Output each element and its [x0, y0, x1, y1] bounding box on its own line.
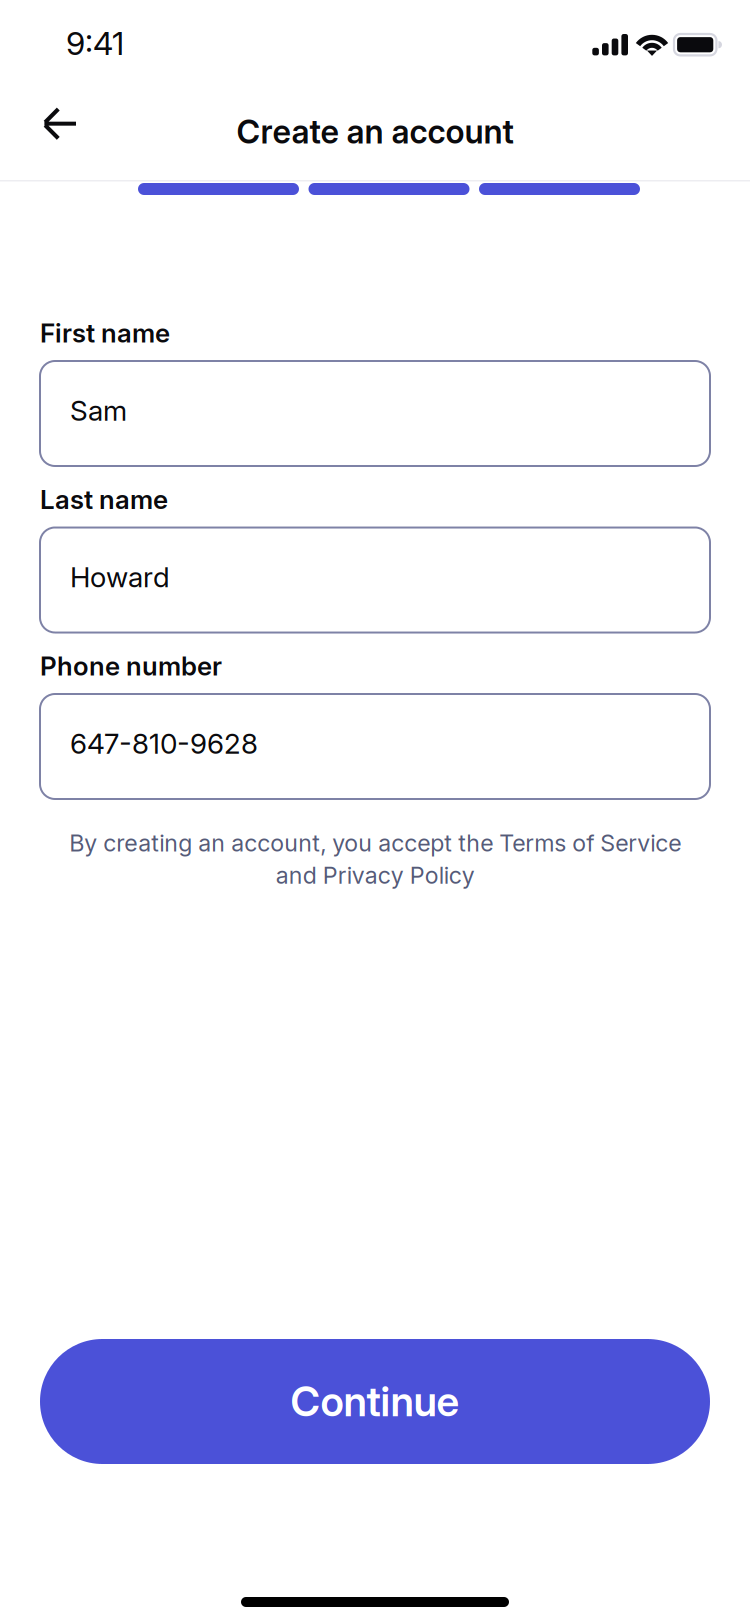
- staticText: 647-810-9628: [70, 727, 258, 760]
- staticText: First name: [40, 317, 170, 349]
- staticText: By creating an account, you accept the T…: [69, 829, 681, 889]
- staticText: Last name: [40, 484, 168, 515]
- button[interactable]: Continue: [40, 1339, 710, 1464]
- staticText: Create an account: [236, 112, 513, 151]
- staticText: Phone number: [40, 650, 222, 682]
- staticText: Continue: [290, 1377, 459, 1426]
- button[interactable]: Back: [30, 94, 90, 154]
- staticText: Sam: [70, 394, 127, 427]
- staticText: 9:41: [66, 24, 124, 63]
- staticText: Howard: [70, 560, 170, 594]
